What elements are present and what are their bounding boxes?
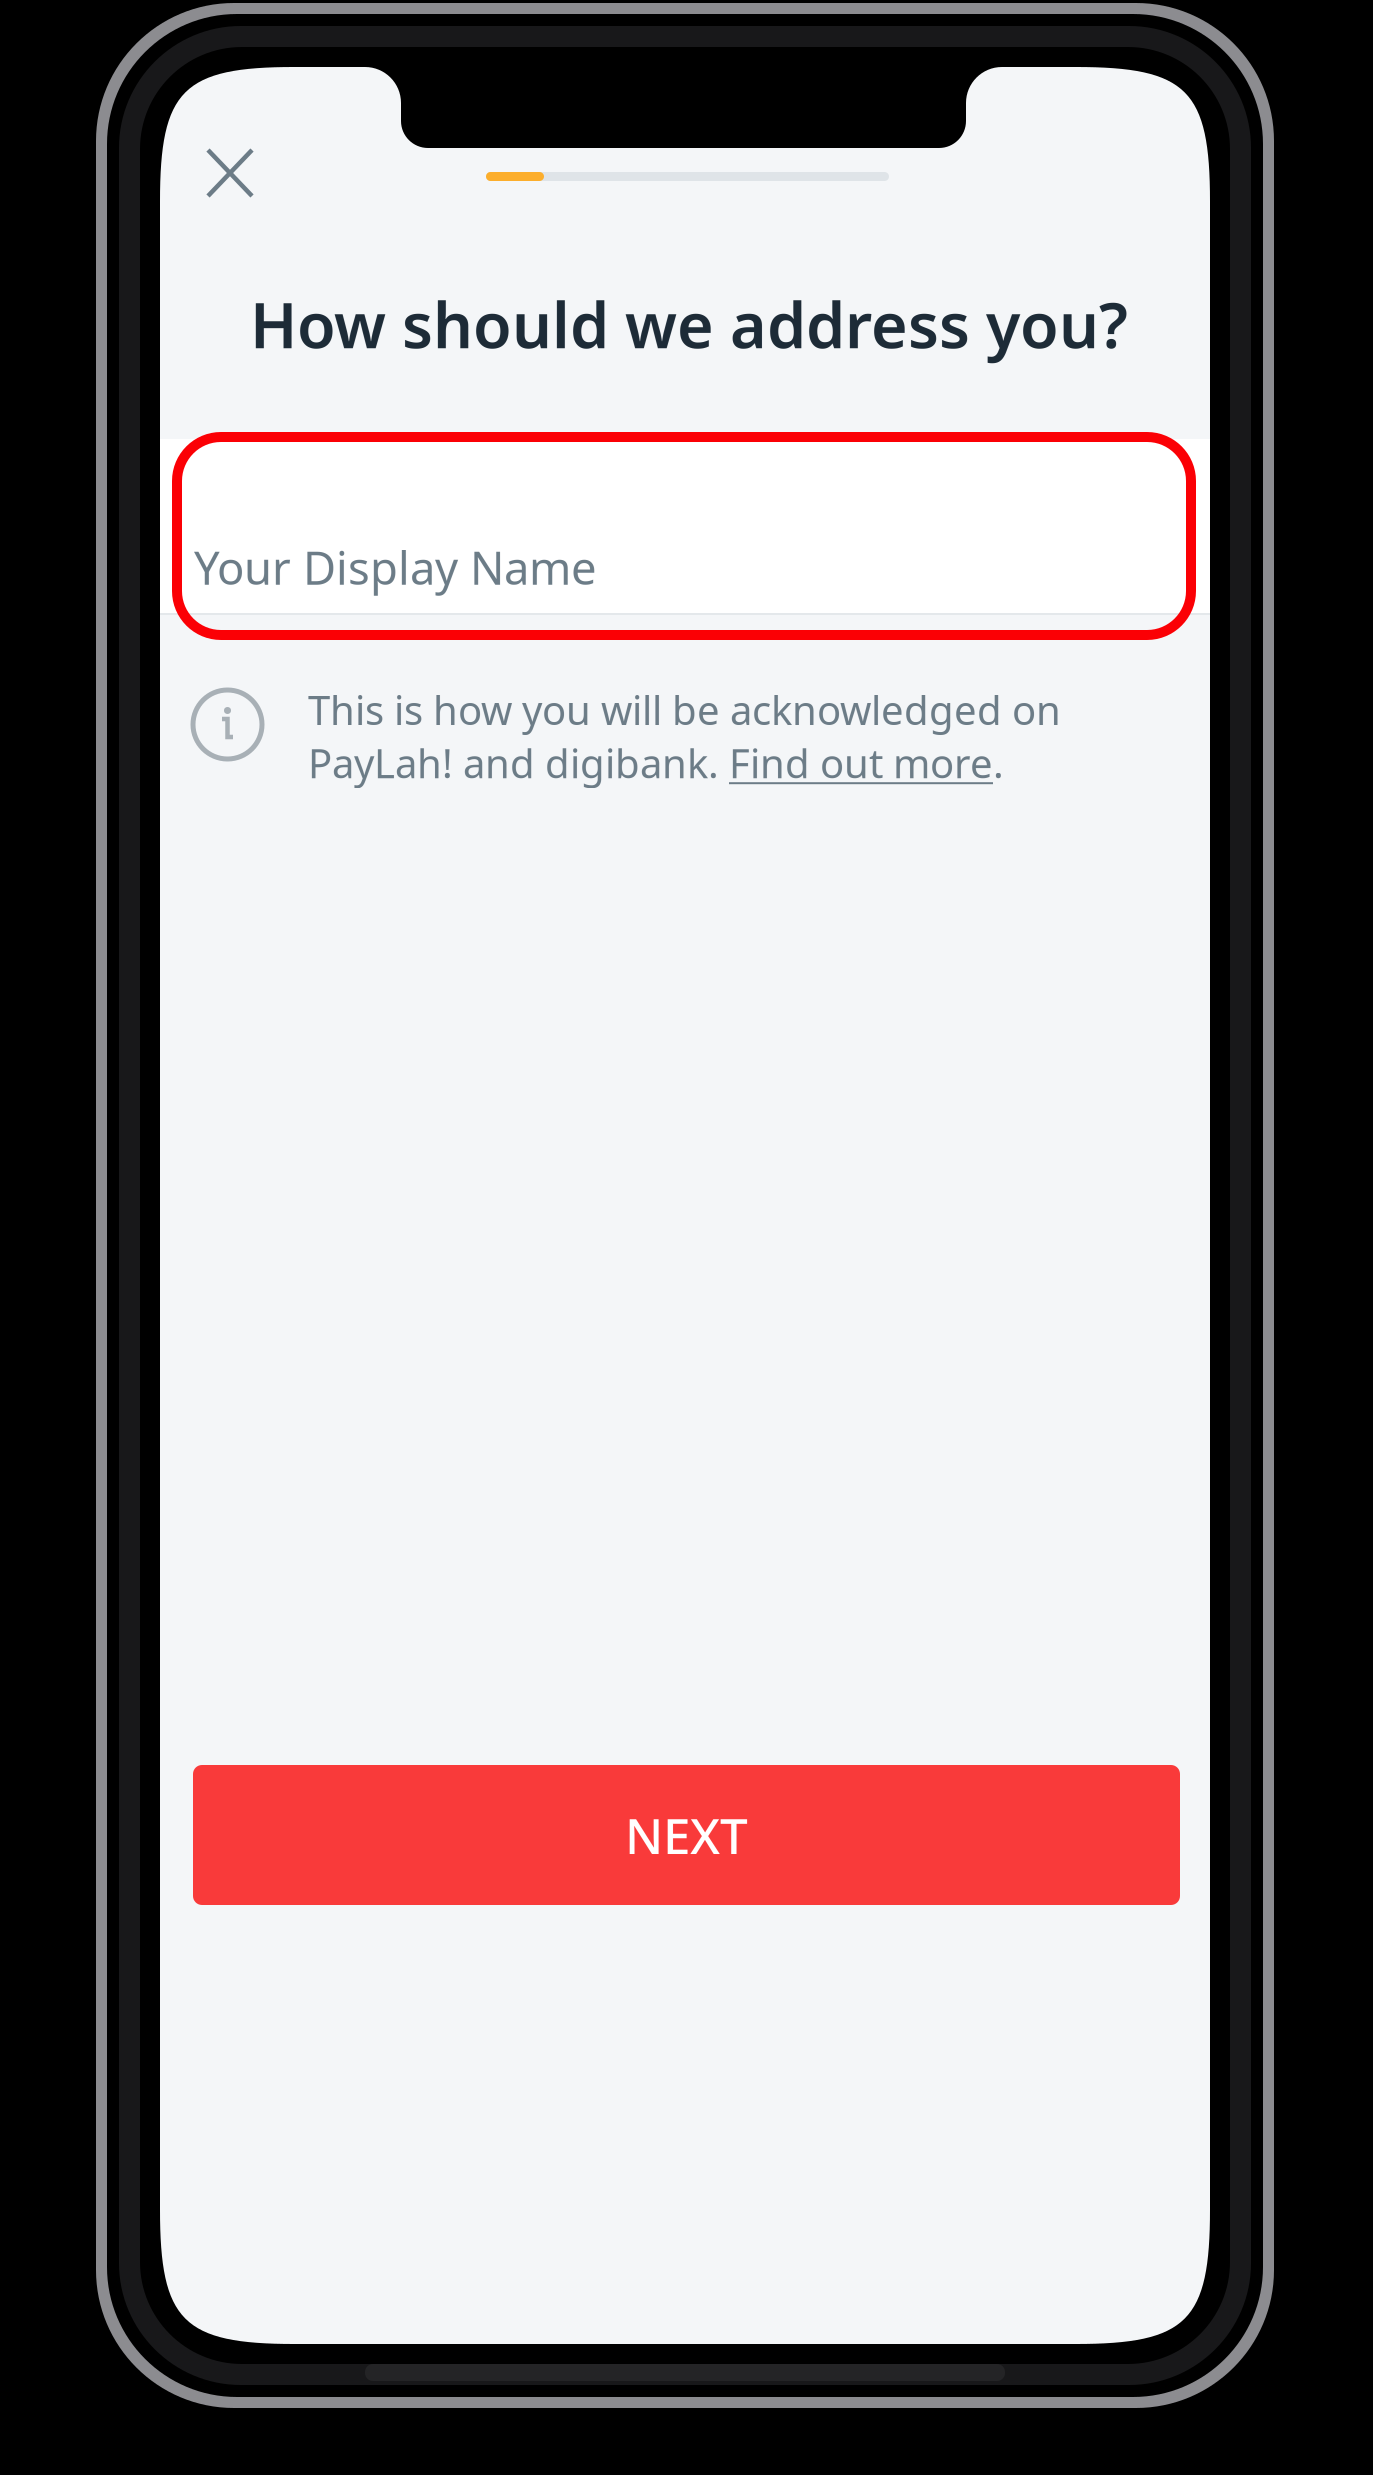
button[interactable]: Your Display Name	[160, 439, 1210, 615]
staticText: NEXT	[625, 1802, 748, 1868]
staticText: Your Display Name	[194, 537, 597, 597]
button[interactable]: Close	[177, 120, 281, 224]
button[interactable]: NEXT	[193, 1765, 1180, 1905]
staticText: This is how you will be acknowledged on …	[308, 683, 1061, 789]
staticText: How should we address you?	[250, 282, 1128, 366]
